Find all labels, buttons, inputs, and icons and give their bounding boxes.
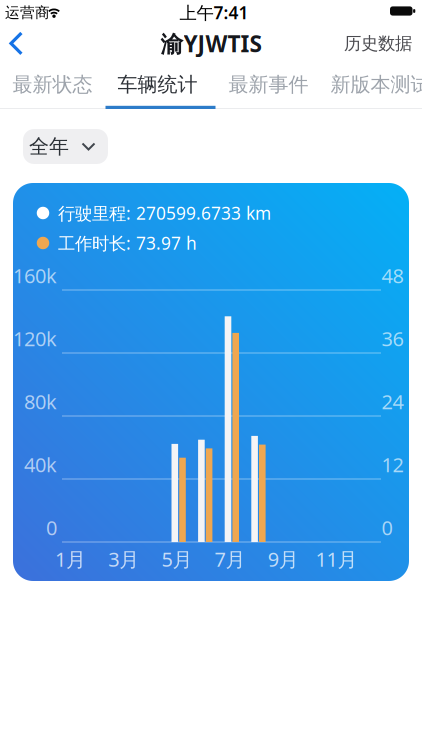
staticText: 9月 (268, 546, 299, 572)
staticText: 最新状态 (12, 72, 92, 97)
staticText: 12 (381, 451, 403, 478)
staticText: 上午7:41 (179, 1, 248, 24)
button[interactable]: 最新状态 (2, 64, 102, 104)
staticText: 1月 (55, 546, 86, 572)
staticText: 80k (24, 388, 57, 415)
button[interactable]: 历史数据 (342, 33, 412, 54)
staticText: 车辆统计 (117, 72, 197, 97)
staticText: 40k (24, 451, 57, 478)
button[interactable] (6, 29, 32, 58)
staticText: 最新事件 (228, 72, 308, 97)
staticText: 运营商 (5, 3, 50, 21)
staticText: 160k (13, 262, 57, 289)
staticText: 0 (46, 514, 57, 541)
button[interactable]: 新版本测试 (330, 64, 422, 104)
staticText: 36 (381, 325, 403, 352)
staticText: 渝YJWTIS (160, 28, 261, 58)
staticText: 新版本测试 (330, 72, 422, 97)
staticText: 5月 (161, 546, 192, 572)
staticText: 48 (381, 262, 403, 289)
button[interactable]: 全年 (23, 129, 108, 164)
staticText: 3月 (108, 546, 139, 572)
staticText: 120k (13, 325, 57, 352)
staticText: 工作时长: 73.97 h (58, 231, 197, 254)
staticText: 全年 (29, 134, 69, 159)
staticText: 7月 (215, 546, 246, 572)
staticText: 行驶里程: 270599.6733 km (58, 201, 271, 224)
button[interactable]: 车辆统计 (107, 64, 207, 104)
staticText: 24 (381, 388, 403, 415)
staticText: 历史数据 (344, 33, 412, 54)
staticText: 11月 (315, 546, 357, 572)
staticText: 0 (381, 514, 392, 541)
button[interactable]: 最新事件 (218, 64, 318, 104)
